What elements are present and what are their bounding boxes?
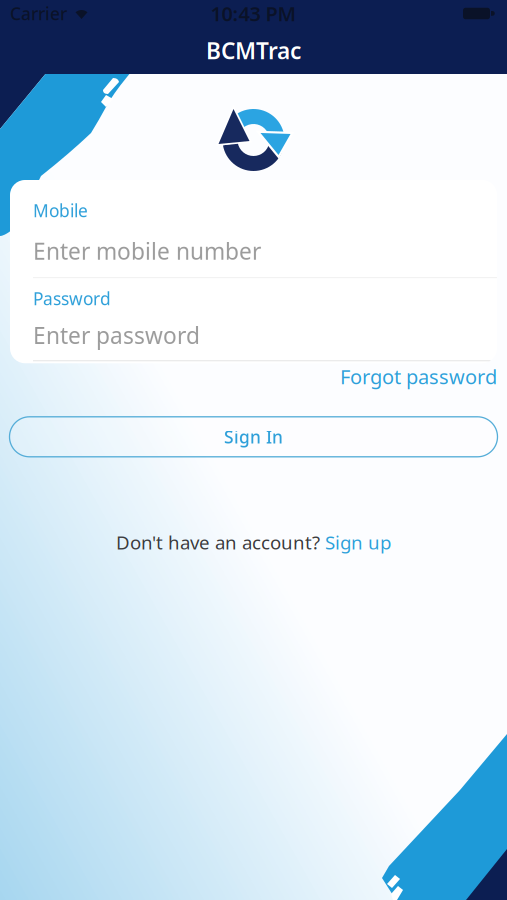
staticText: BCMTrac [206,35,301,65]
staticText: Password [33,287,111,310]
staticText: Enter password [33,320,200,350]
staticText: Don't have an account? [116,530,325,555]
staticText: Sign up [325,530,391,555]
button[interactable]: Sign In [9,417,497,457]
button[interactable]: Sign up [325,530,391,555]
staticText: 10:43 PM [210,0,296,27]
button[interactable]: Forgot password [340,363,497,390]
staticText: Mobile [33,199,88,222]
staticText: Sign In [224,425,283,448]
staticText: Carrier [10,2,67,25]
staticText: Forgot password [340,363,497,390]
staticText: Enter mobile number [33,236,261,266]
